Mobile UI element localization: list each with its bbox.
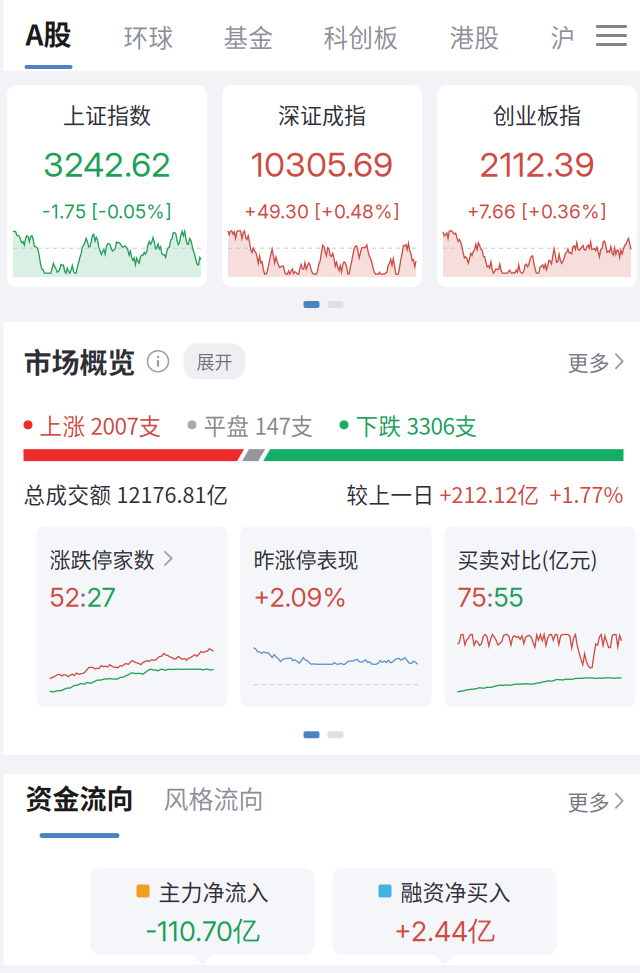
- staticText: +212.12亿 +1.77%: [434, 478, 623, 509]
- staticText: 更多: [567, 346, 609, 376]
- staticText: :: [486, 582, 493, 613]
- staticText: 上证指数: [63, 98, 151, 130]
- staticText: 昨涨停表现: [253, 543, 358, 574]
- button[interactable]: 基金: [173, 0, 273, 71]
- button[interactable]: 上证指数: [7, 85, 207, 287]
- staticText: +7.66 [+0.36%]: [467, 200, 607, 223]
- staticText: 资金流向: [25, 778, 133, 817]
- button[interactable]: 涨跌停家数: [36, 526, 227, 707]
- button[interactable]: 买卖对比(亿元): [444, 526, 635, 707]
- staticText: +49.30 [+0.48%]: [244, 200, 400, 223]
- staticText: -110.70亿: [145, 914, 260, 948]
- staticText: 深证成指: [278, 98, 366, 130]
- staticText: 平盘 147支: [203, 408, 313, 441]
- button[interactable]: 沪: [499, 0, 575, 71]
- staticText: +2.09%: [253, 582, 346, 613]
- button[interactable]: 融资净买入: [332, 868, 556, 965]
- staticText: -1.75 [-0.05%]: [42, 200, 172, 223]
- button[interactable]: 环球: [72, 0, 173, 71]
- button[interactable]: Menu: [586, 0, 640, 71]
- staticText: 沪: [550, 19, 575, 54]
- button[interactable]: 深证成指: [222, 85, 422, 287]
- staticText: 展开: [196, 348, 232, 374]
- staticText: 创业板指: [493, 98, 581, 130]
- staticText: 基金: [223, 19, 273, 54]
- button[interactable]: 风格流向: [133, 774, 263, 845]
- staticText: 主力净流入: [158, 875, 268, 907]
- button[interactable]: A股: [3, 0, 72, 71]
- staticText: A股: [25, 13, 71, 53]
- button[interactable]: 展开: [183, 343, 245, 379]
- staticText: 52: [49, 582, 79, 613]
- staticText: 55: [493, 582, 523, 613]
- button[interactable]: 更多: [567, 774, 640, 845]
- staticText: 总成交额 12176.81亿: [23, 478, 228, 509]
- staticText: 更多: [567, 786, 609, 816]
- button[interactable]: 资金流向: [3, 774, 133, 845]
- button[interactable]: 主力净流入: [90, 868, 314, 965]
- staticText: 3242.62: [43, 144, 171, 185]
- staticText: +2.44亿: [394, 914, 495, 948]
- staticText: 科创板: [323, 19, 398, 54]
- staticText: 融资净买入: [400, 875, 510, 907]
- staticText: 市场概览: [23, 341, 135, 381]
- staticText: 涨跌停家数: [49, 543, 154, 574]
- button[interactable]: 更多: [567, 346, 623, 376]
- button[interactable]: 科创板: [273, 0, 398, 71]
- button[interactable]: 创业板指: [437, 85, 637, 287]
- button[interactable]: 港股: [398, 0, 499, 71]
- staticText: :: [79, 582, 86, 613]
- staticText: 较上一日: [346, 478, 434, 509]
- staticText: 75: [457, 582, 486, 613]
- staticText: 2112.39: [479, 144, 594, 185]
- staticText: 风格流向: [163, 780, 263, 816]
- staticText: 10305.69: [251, 144, 393, 185]
- button[interactable]: 昨涨停表现: [240, 526, 431, 707]
- staticText: 下跌 3306支: [355, 408, 477, 441]
- staticText: 27: [86, 582, 115, 613]
- staticText: 港股: [449, 19, 499, 54]
- staticText: 环球: [123, 19, 173, 54]
- staticText: 买卖对比(亿元): [457, 543, 597, 574]
- staticText: 上涨 2007支: [39, 408, 161, 441]
